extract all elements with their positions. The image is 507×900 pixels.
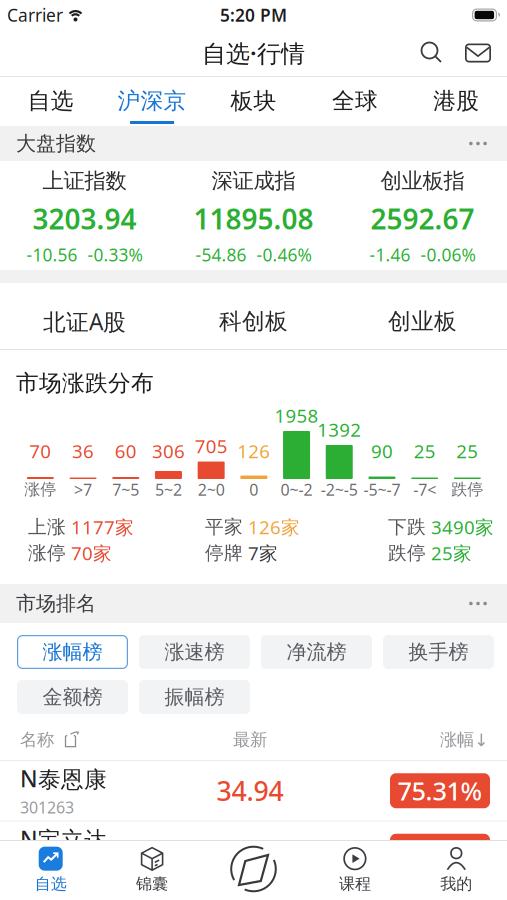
button[interactable]: 港股 (406, 76, 507, 126)
button[interactable]: 科创板 (169, 283, 338, 350)
staticText: 跌停 (388, 541, 426, 564)
staticText: 上证指数 (42, 168, 126, 194)
button[interactable]: Search (419, 41, 443, 65)
staticText: 净流榜 (286, 640, 346, 664)
staticText: 5~2 (155, 479, 182, 500)
staticText: 自选·行情 (202, 37, 305, 69)
staticText: Carrier (7, 3, 63, 26)
button[interactable]: 首页 (203, 841, 304, 899)
staticText: 90 (371, 439, 393, 463)
staticText: 306 (152, 439, 185, 463)
staticText: 3490家 (431, 515, 494, 539)
staticText: 涨停 (24, 480, 56, 499)
staticText: 深证成指 (211, 168, 295, 194)
staticText: 振幅榜 (164, 685, 224, 709)
staticText: 北证A股 (43, 306, 126, 336)
staticText: 金额榜 (42, 685, 102, 709)
button[interactable]: 自选 (0, 76, 101, 126)
staticText: 板块 (230, 87, 276, 115)
staticText: 0~-2 (281, 479, 313, 500)
staticText: 下跌 (388, 515, 426, 538)
staticText: 大盘指数 (16, 131, 96, 156)
button[interactable]: 自选 (0, 841, 101, 899)
button[interactable]: 金额榜 (17, 680, 128, 714)
staticText: -54.86 -0.46% (195, 243, 311, 266)
staticText: >7 (74, 479, 92, 500)
staticText: 平家 (205, 515, 243, 538)
staticText: 市场涨跌分布 (16, 369, 154, 397)
staticText: 60 (115, 439, 137, 463)
staticText: 停牌 (205, 541, 243, 564)
staticText: 科创板 (219, 308, 288, 335)
button[interactable]: 全球 (304, 76, 406, 126)
button[interactable]: 涨速榜 (139, 635, 250, 669)
button[interactable]: 北证A股 (0, 283, 169, 350)
button[interactable]: Messages (465, 43, 491, 62)
button[interactable]: More (463, 593, 493, 613)
button[interactable]: 振幅榜 (139, 680, 250, 714)
staticText: 市场排名 (16, 591, 96, 616)
staticText: 涨幅榜 (42, 640, 102, 664)
staticText: 7家 (248, 541, 278, 565)
button[interactable]: 涨幅榜 (17, 635, 128, 669)
staticText: 自选 (35, 874, 67, 894)
button[interactable]: 板块 (203, 76, 304, 126)
staticText: -2~-5 (321, 479, 358, 500)
staticText: 自选 (28, 87, 74, 115)
button[interactable]: N泰恩康 (0, 761, 507, 820)
staticText: 跌停 (451, 480, 483, 499)
staticText: 涨幅↓ (440, 729, 489, 750)
staticText: 70家 (71, 541, 112, 565)
staticText: 1392 (317, 417, 361, 442)
staticText: 2592.67 (370, 200, 474, 237)
staticText: -10.56 -0.33% (26, 243, 142, 266)
button[interactable]: 净流榜 (261, 635, 372, 669)
staticText: 涨停 (28, 541, 66, 564)
button[interactable]: 上证指数 (0, 161, 169, 270)
staticText: 创业板 (388, 308, 457, 335)
button[interactable]: 课程 (304, 841, 406, 899)
staticText: 25家 (431, 541, 472, 565)
button[interactable]: 沪深京 (101, 76, 203, 126)
staticText: 44.02% (397, 834, 482, 868)
staticText: 最新 (233, 729, 267, 750)
staticText: 全球 (332, 87, 378, 115)
staticText: 3203.94 (32, 200, 136, 237)
button[interactable]: N宝立达 (0, 821, 507, 881)
staticText: 70 (29, 439, 51, 463)
button[interactable]: 我的 (406, 841, 507, 899)
staticText: 涨速榜 (164, 640, 224, 664)
staticText: 25 (456, 439, 478, 463)
button[interactable]: 深证成指 (169, 161, 338, 270)
staticText: 5:20 PM (220, 3, 287, 26)
staticText: 11895.08 (193, 200, 313, 237)
staticText: 0 (249, 479, 258, 500)
staticText: -7< (413, 479, 436, 500)
button[interactable]: 换手榜 (383, 635, 494, 669)
staticText: 2~0 (198, 479, 225, 500)
staticText: N宝立达 (20, 824, 107, 854)
staticText: 75.31% (397, 774, 482, 807)
staticText: 上涨 (28, 515, 66, 538)
staticText: 34.94 (216, 773, 283, 808)
staticText: 港股 (433, 87, 479, 115)
staticText: 创业板指 (380, 168, 464, 194)
staticText: 7~5 (112, 479, 139, 500)
staticText: 705 (195, 434, 228, 458)
staticText: -5~-7 (363, 479, 400, 500)
staticText: 换手榜 (408, 640, 468, 664)
staticText: 301263 (20, 797, 74, 818)
button[interactable]: 创业板 (338, 283, 507, 350)
staticText: 锦囊 (136, 874, 168, 894)
staticText: N泰恩康 (20, 763, 107, 794)
staticText: 21.60 (216, 833, 283, 869)
staticText: 1958 (275, 403, 319, 428)
button[interactable]: 锦囊 (101, 841, 203, 899)
button[interactable]: More (463, 133, 493, 153)
staticText: 301068 (20, 857, 74, 878)
staticText: -1.46 -0.06% (369, 243, 475, 266)
staticText: 1177家 (71, 515, 134, 539)
staticText: 我的 (440, 874, 472, 894)
staticText: 名称 (20, 729, 54, 750)
button[interactable]: 创业板指 (338, 161, 507, 270)
